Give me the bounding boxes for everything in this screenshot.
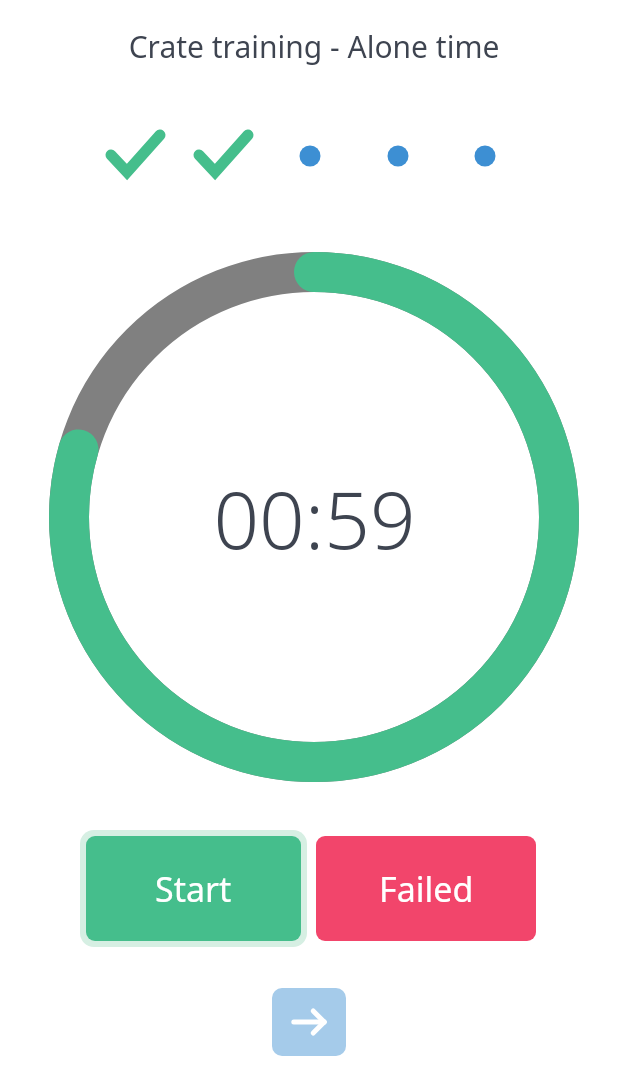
button[interactable]: Failed (316, 836, 536, 941)
staticText: Failed (379, 866, 474, 912)
staticText: 00:59 (213, 463, 416, 572)
button[interactable]: Next (272, 988, 346, 1056)
button[interactable]: Start (86, 836, 301, 941)
staticText: Start (155, 866, 232, 912)
staticText: Crate training - Alone time (0, 26, 628, 67)
